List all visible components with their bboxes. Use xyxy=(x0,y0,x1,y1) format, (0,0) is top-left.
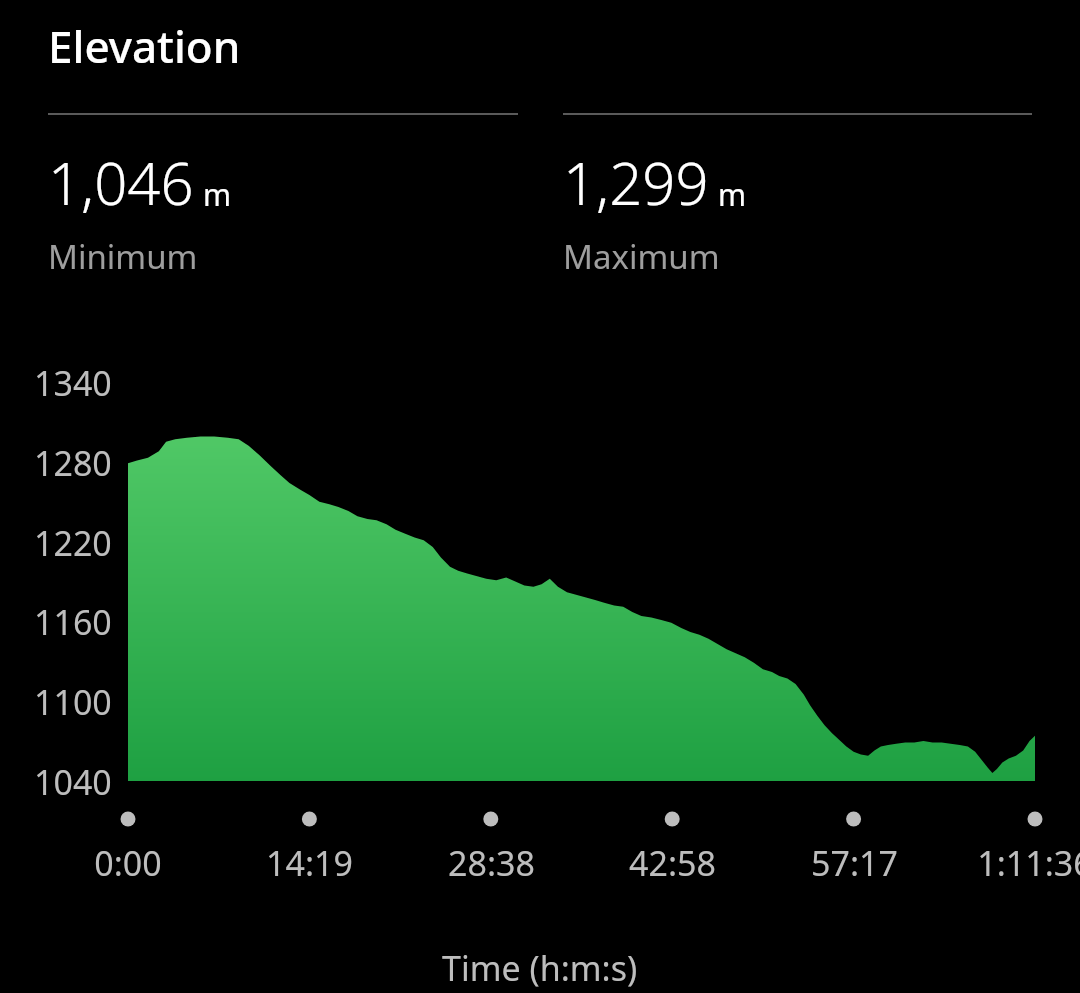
staticText: Time (h:m:s) xyxy=(442,945,638,991)
staticText: m xyxy=(718,174,747,215)
button[interactable]: 1,299 xyxy=(563,113,1032,279)
staticText: 1,046 xyxy=(48,143,194,222)
staticText: 28:38 xyxy=(448,840,535,886)
staticText: m xyxy=(203,174,232,215)
staticText: 1040 xyxy=(34,759,112,805)
staticText: 1:11:36 xyxy=(977,840,1080,886)
staticText: 14:19 xyxy=(266,840,353,886)
staticText: 1100 xyxy=(34,679,112,725)
staticText: 1160 xyxy=(34,599,112,645)
staticText: Elevation xyxy=(48,16,241,76)
staticText: 42:58 xyxy=(629,840,716,886)
staticText: 1,299 xyxy=(563,143,709,222)
staticText: 1220 xyxy=(34,520,112,566)
staticText: Minimum xyxy=(48,234,198,279)
staticText: 0:00 xyxy=(94,840,162,886)
staticText: 1280 xyxy=(34,440,112,486)
staticText: 1340 xyxy=(34,360,112,406)
staticText: 57:17 xyxy=(811,840,898,886)
button[interactable]: 1,046 xyxy=(48,113,518,279)
staticText: Maximum xyxy=(563,234,720,279)
